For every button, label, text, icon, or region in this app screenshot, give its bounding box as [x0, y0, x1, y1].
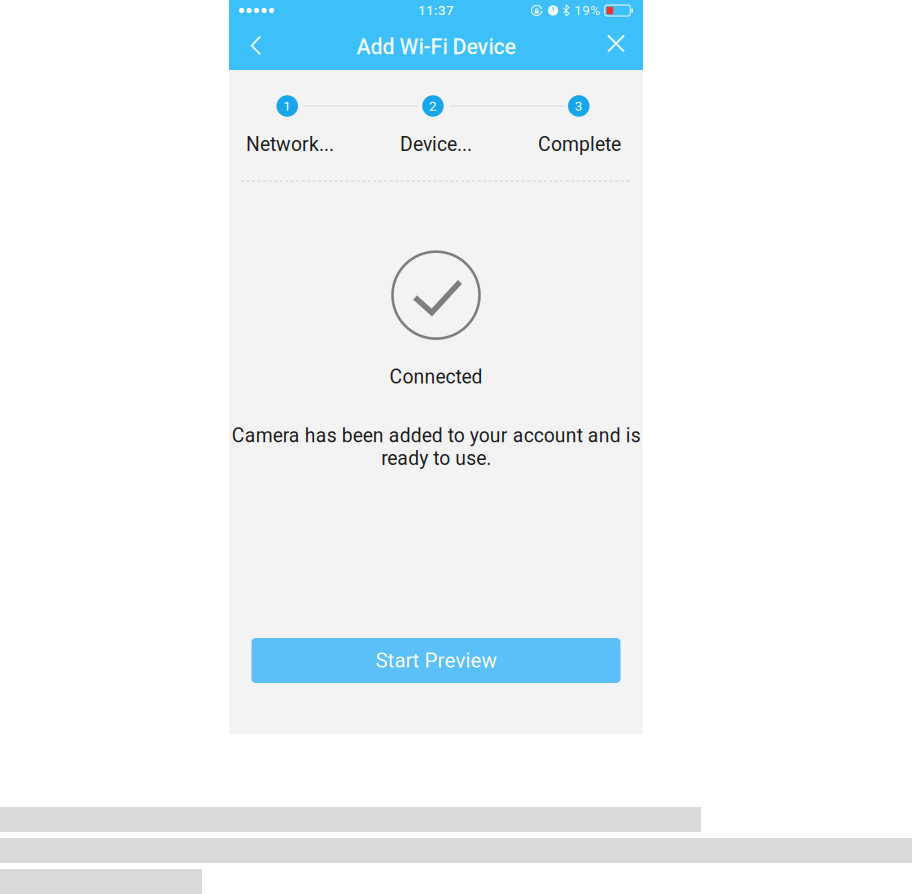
staticText: Complete [538, 133, 621, 156]
staticText: 11:37 [418, 3, 454, 18]
button[interactable]: Back [234, 23, 278, 67]
staticText: 2 [429, 98, 437, 114]
staticText: Add Wi-Fi Device [356, 34, 515, 60]
staticText: Connected [389, 366, 482, 388]
staticText: 1 [283, 98, 291, 114]
staticText: 19% [574, 3, 600, 18]
staticText: Network... [246, 133, 334, 156]
staticText: Start Preview [375, 648, 496, 673]
staticText: Camera has been added to your account an… [231, 424, 640, 470]
staticText: Device... [400, 133, 472, 156]
button[interactable]: Close [594, 23, 638, 67]
staticText: 3 [575, 98, 583, 114]
button[interactable]: Start Preview [251, 638, 620, 683]
